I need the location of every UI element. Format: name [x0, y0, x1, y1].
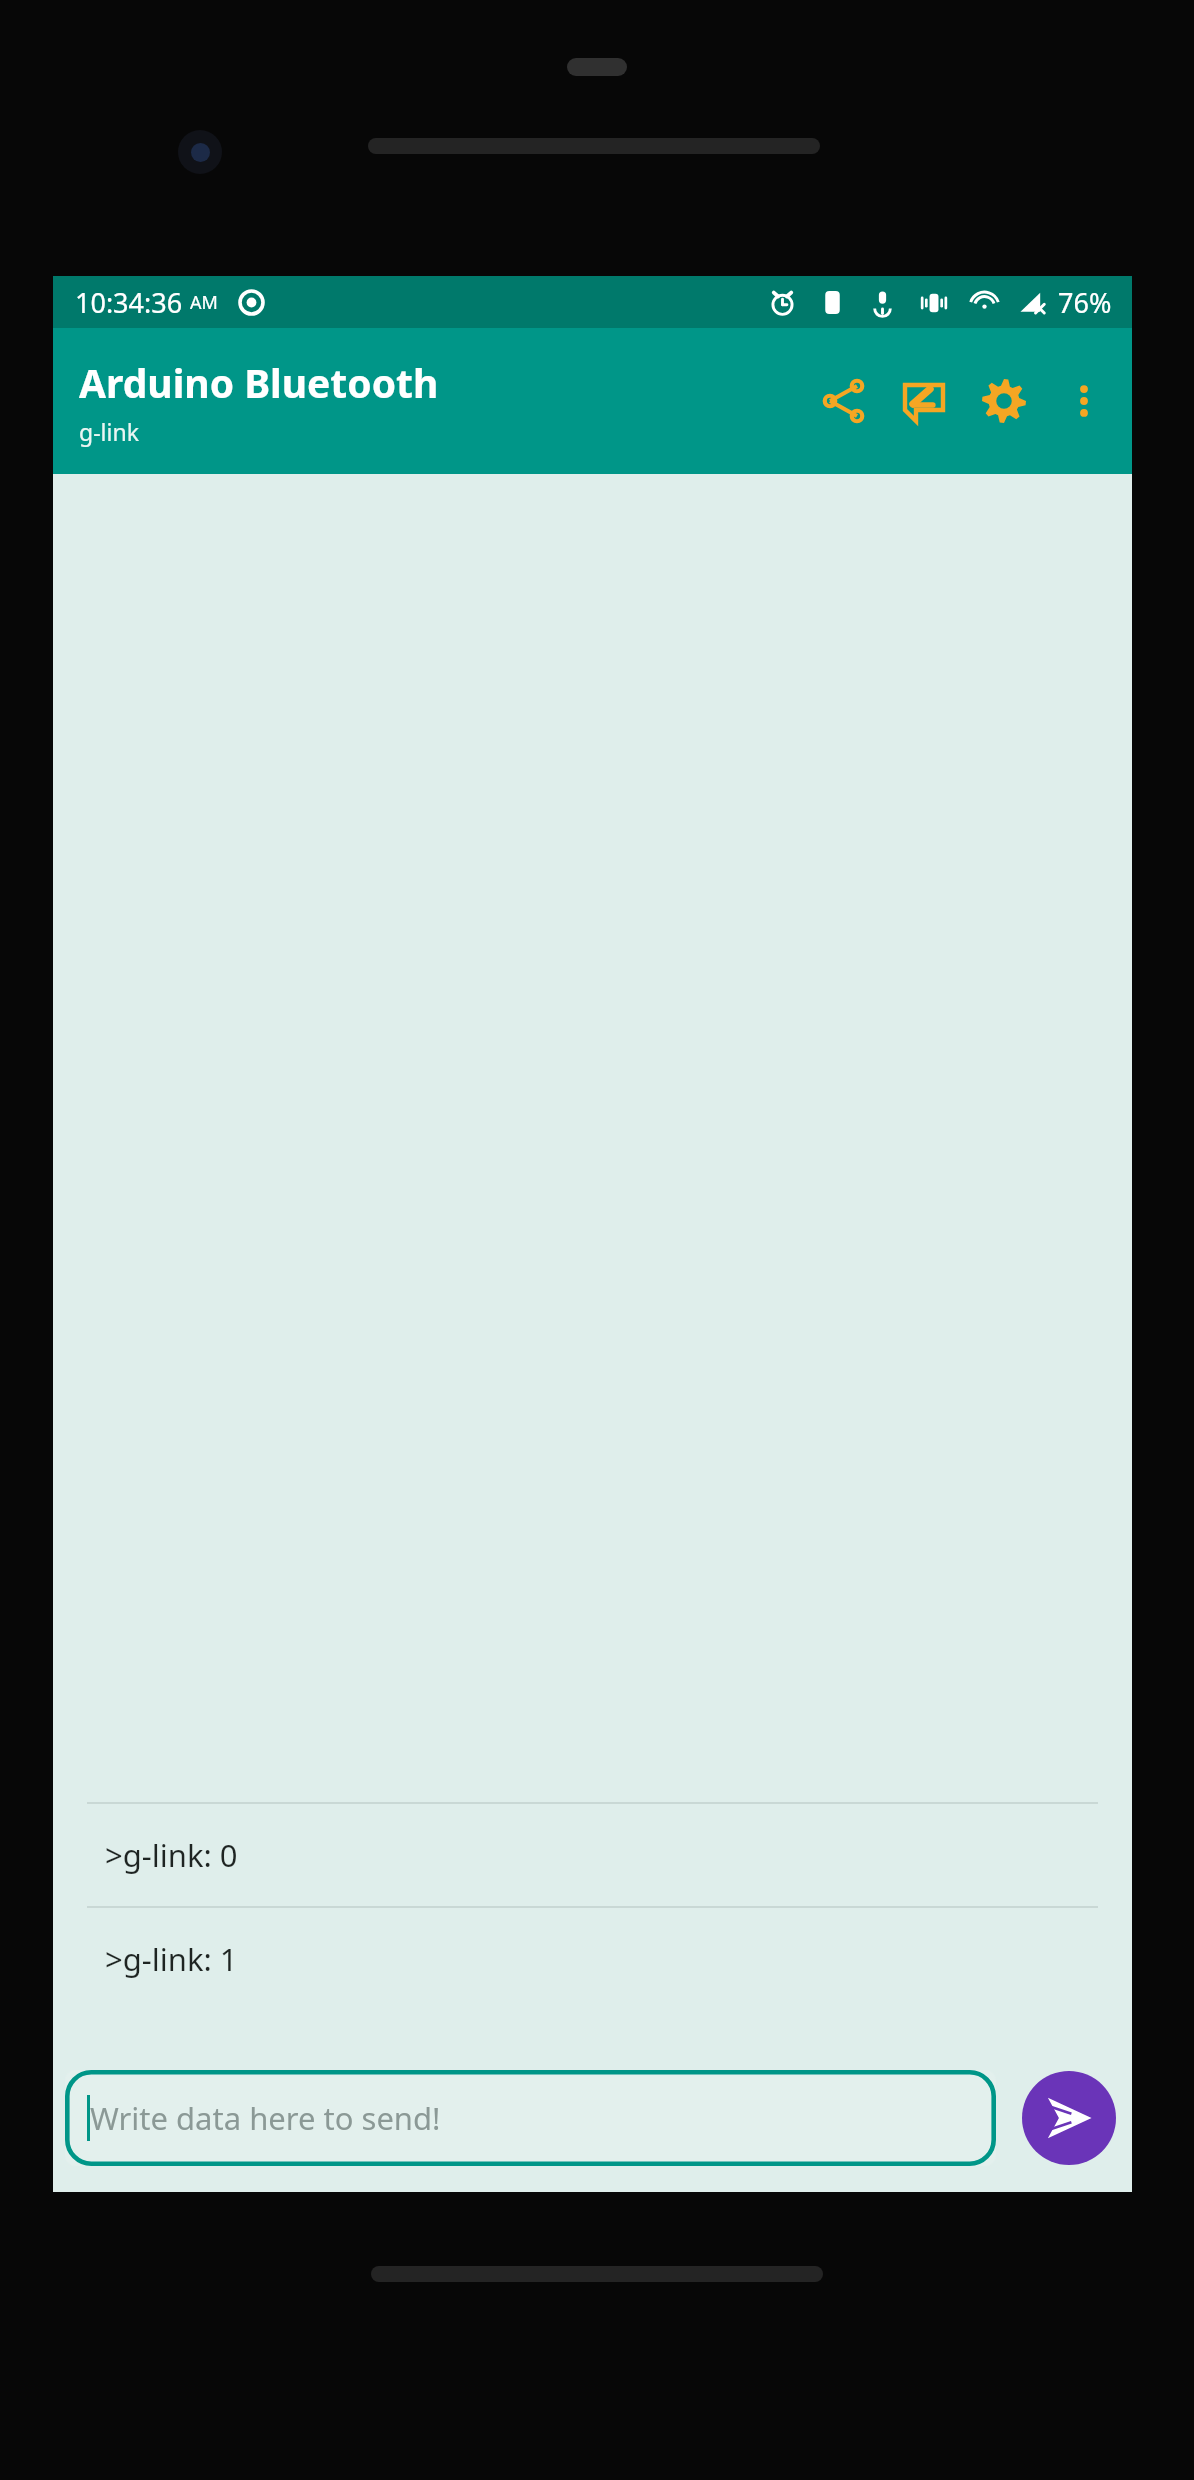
staticText: >g-link: 1 [105, 1938, 238, 1980]
staticText: 10:34:36 [75, 284, 183, 321]
button[interactable]: Write data here to send! [65, 2070, 996, 2166]
staticText: >g-link: 0 [105, 1834, 238, 1876]
staticText: AM [190, 290, 218, 315]
staticText: Write data here to send! [90, 2097, 441, 2139]
staticText: 76% [1058, 284, 1112, 321]
button[interactable]: Compose message [884, 349, 964, 453]
staticText: Arduino Bluetooth [79, 356, 439, 409]
button[interactable]: Send [1022, 2071, 1116, 2165]
button[interactable]: >g-link: 1 [53, 1908, 1132, 2010]
button[interactable]: Share [804, 349, 884, 453]
staticText: g-link [79, 416, 139, 447]
button[interactable]: More options [1044, 349, 1124, 453]
button[interactable]: Settings [964, 349, 1044, 453]
button[interactable]: >g-link: 0 [53, 1804, 1132, 1906]
